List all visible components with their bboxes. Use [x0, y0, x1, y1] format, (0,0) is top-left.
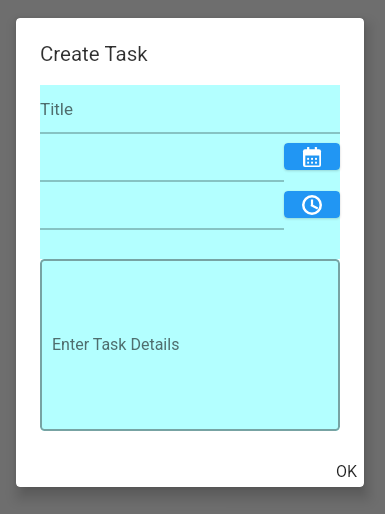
staticText: Create Task — [40, 42, 148, 66]
button[interactable]: Enter Task Details — [40, 259, 340, 431]
button[interactable]: Pick time — [284, 191, 340, 218]
staticText: Enter Task Details — [52, 335, 180, 354]
button[interactable] — [40, 181, 284, 229]
button[interactable] — [40, 133, 284, 181]
button[interactable]: OK — [321, 453, 364, 487]
staticText: Title — [40, 99, 73, 119]
button[interactable]: Pick date — [284, 143, 340, 170]
button[interactable]: Title — [40, 85, 340, 133]
staticText: OK — [336, 462, 358, 481]
